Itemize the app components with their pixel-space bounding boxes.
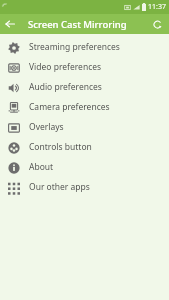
button[interactable]: Overlays bbox=[0, 117, 169, 137]
staticText: 11:37 bbox=[148, 2, 166, 12]
button[interactable]: Controls button bbox=[0, 137, 169, 157]
button[interactable]: Refresh bbox=[148, 15, 166, 33]
staticText: Screen Cast Mirroring bbox=[28, 18, 127, 31]
staticText: About bbox=[29, 161, 54, 173]
staticText: Our other apps bbox=[29, 181, 90, 193]
button[interactable]: Audio preferences bbox=[0, 77, 169, 97]
button[interactable]: Streaming preferences bbox=[0, 37, 169, 57]
button[interactable]: About bbox=[0, 157, 169, 177]
button[interactable]: Camera preferences bbox=[0, 97, 169, 117]
staticText: Audio preferences bbox=[29, 81, 102, 93]
staticText: Overlays bbox=[29, 121, 64, 133]
button[interactable]: Video preferences bbox=[0, 57, 169, 77]
button[interactable]: Back bbox=[0, 14, 20, 34]
button[interactable]: Our other apps bbox=[0, 177, 169, 197]
staticText: Streaming preferences bbox=[29, 41, 120, 53]
staticText: Camera preferences bbox=[29, 101, 110, 113]
staticText: Controls button bbox=[29, 141, 92, 153]
staticText: Video preferences bbox=[29, 61, 102, 73]
